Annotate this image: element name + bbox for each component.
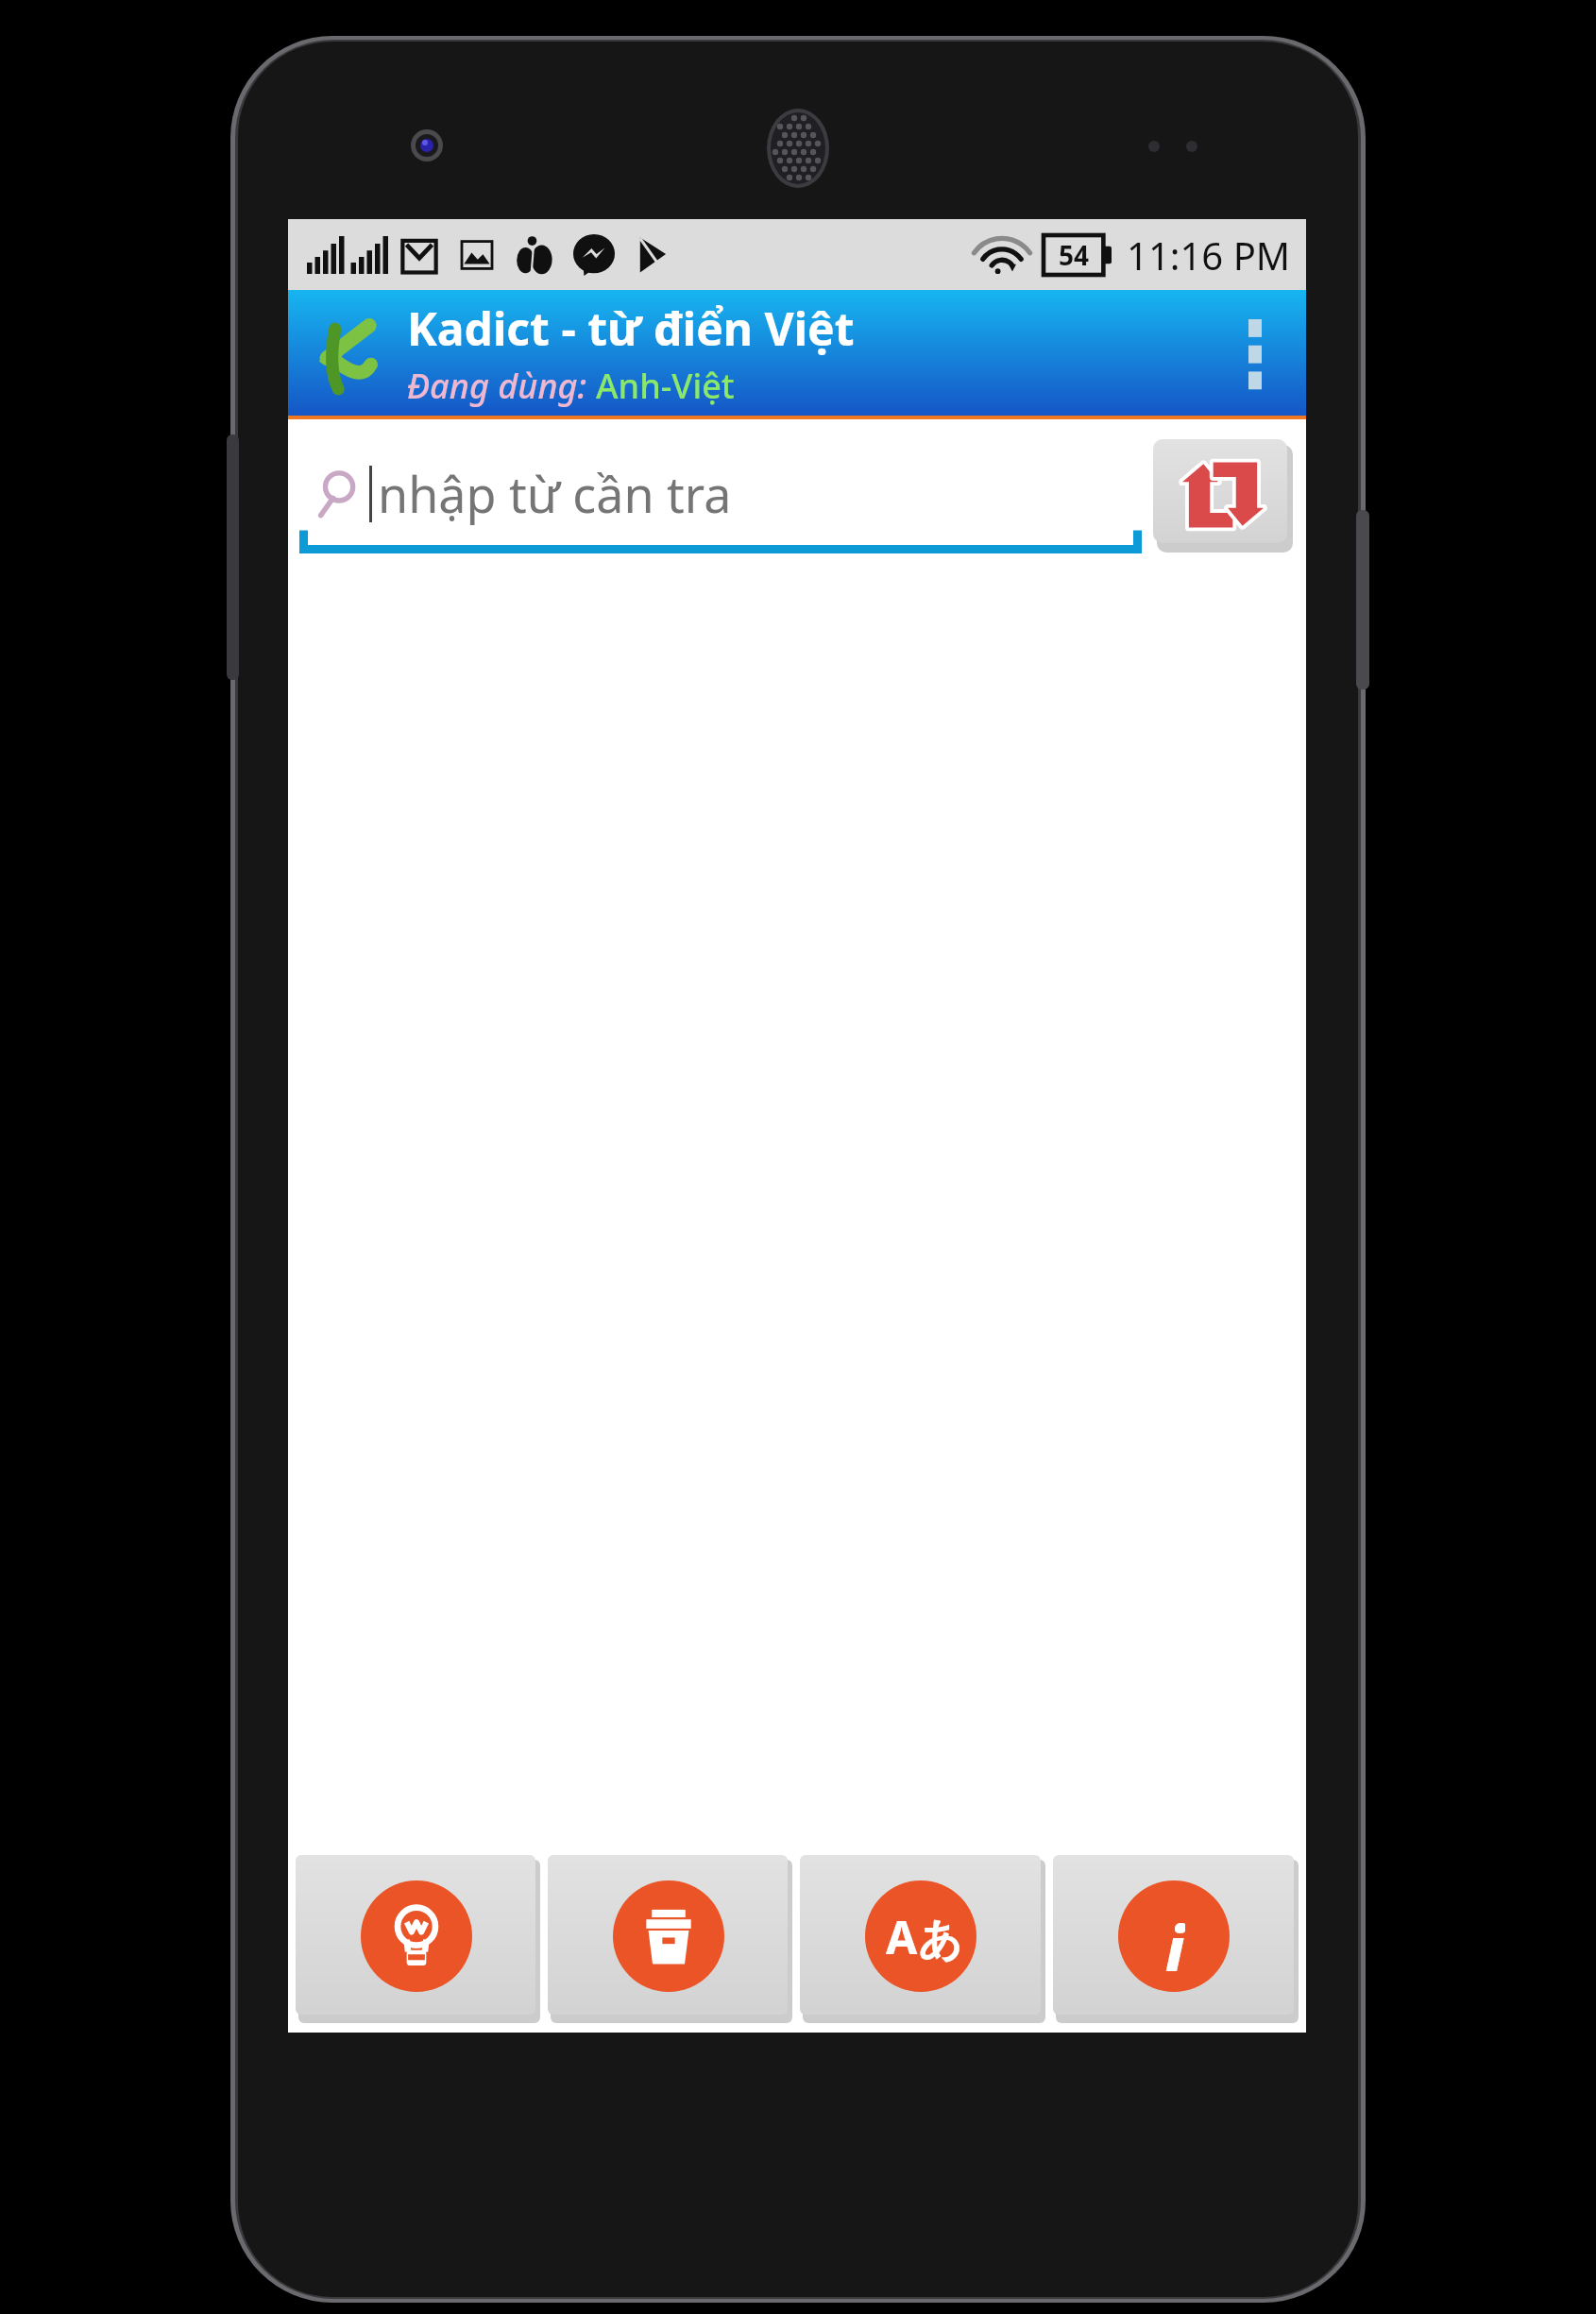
staticText: nhập từ cần tra	[378, 460, 732, 527]
staticText: i	[1163, 1901, 1185, 1971]
staticText: A	[886, 1906, 918, 1967]
staticText: Đang dùng:	[407, 363, 596, 409]
button[interactable]: Information	[1053, 1855, 1299, 2021]
button[interactable]: Suggestions	[296, 1855, 540, 2021]
staticText: あ	[918, 1913, 956, 1967]
staticText: Kadict - từ điển Việt	[407, 298, 855, 359]
staticText: Anh-Việt	[596, 363, 735, 409]
button[interactable]: Swap dictionary direction	[1153, 439, 1293, 551]
button[interactable]: Saved words	[548, 1855, 792, 2021]
staticText: 11:16 PM	[1127, 230, 1291, 281]
staticText: 54	[1059, 237, 1090, 273]
button[interactable]: More options	[1221, 290, 1289, 416]
button[interactable]: nhập từ cần tra	[299, 433, 1142, 553]
button[interactable]: Change language	[800, 1855, 1045, 2021]
